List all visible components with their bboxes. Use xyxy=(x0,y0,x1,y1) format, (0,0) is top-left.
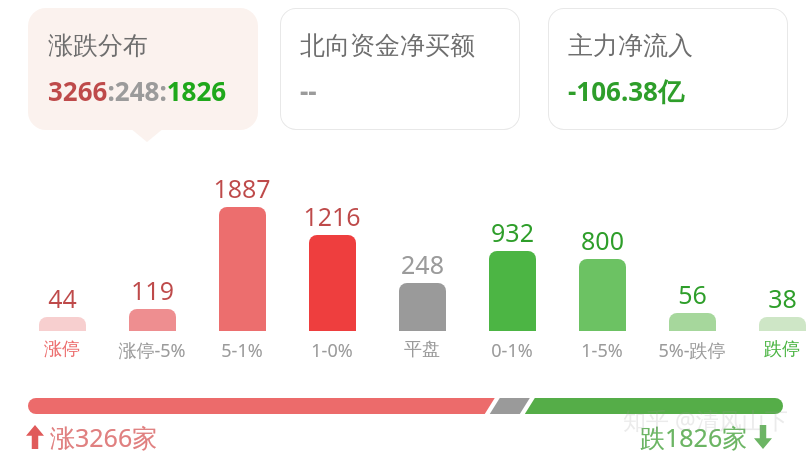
other: 下跌 xyxy=(754,425,772,449)
staticText: 38 xyxy=(768,281,797,315)
staticText: -- xyxy=(300,73,317,108)
button[interactable]: 涨跌家数比例 xyxy=(28,398,783,414)
button[interactable] xyxy=(309,235,356,331)
button[interactable] xyxy=(489,251,536,331)
staticText: 主力净流入 xyxy=(568,30,693,61)
staticText: 1887 xyxy=(213,171,271,205)
staticText: 119 xyxy=(131,273,174,307)
button[interactable]: 上涨 xyxy=(26,420,158,452)
other: 上涨 xyxy=(26,425,44,449)
button[interactable]: 北向资金净买额 xyxy=(270,0,538,140)
button[interactable] xyxy=(579,259,626,331)
staticText: 涨停 xyxy=(44,338,80,361)
staticText: 5%-跌停 xyxy=(658,338,726,363)
staticText: -106.38亿 xyxy=(568,73,684,109)
staticText: 跌停 xyxy=(764,338,800,361)
staticText: 5-1% xyxy=(221,338,263,363)
staticText: 涨停-5% xyxy=(118,338,186,363)
button[interactable] xyxy=(399,283,446,331)
staticText: 北向资金净买额 xyxy=(300,30,475,61)
staticText: 1-5% xyxy=(581,338,623,363)
staticText: 涨3266家 xyxy=(50,420,158,452)
staticText: 0-1% xyxy=(491,338,533,363)
staticText: 3266:248:1826 xyxy=(48,73,227,108)
staticText: 44 xyxy=(48,281,77,315)
button[interactable] xyxy=(129,309,176,331)
staticText: 932 xyxy=(491,215,534,249)
staticText: 248 xyxy=(401,247,444,281)
button[interactable] xyxy=(669,313,716,331)
staticText: 平盘 xyxy=(404,338,440,361)
button[interactable]: 涨跌分布 xyxy=(0,0,270,140)
staticText: 1-0% xyxy=(311,338,353,363)
staticText: 1216 xyxy=(303,199,361,233)
button[interactable] xyxy=(39,317,86,331)
staticText: 涨跌分布 xyxy=(48,30,148,61)
button[interactable] xyxy=(219,207,266,331)
button[interactable]: 跌1826家 xyxy=(640,420,772,452)
staticText: 跌1826家 xyxy=(640,420,748,452)
staticText: 56 xyxy=(678,277,707,311)
button[interactable]: 主力净流入 xyxy=(538,0,806,140)
staticText: 800 xyxy=(581,223,624,257)
staticText: 知乎 @清风山下 xyxy=(623,404,788,435)
button[interactable] xyxy=(759,317,806,331)
